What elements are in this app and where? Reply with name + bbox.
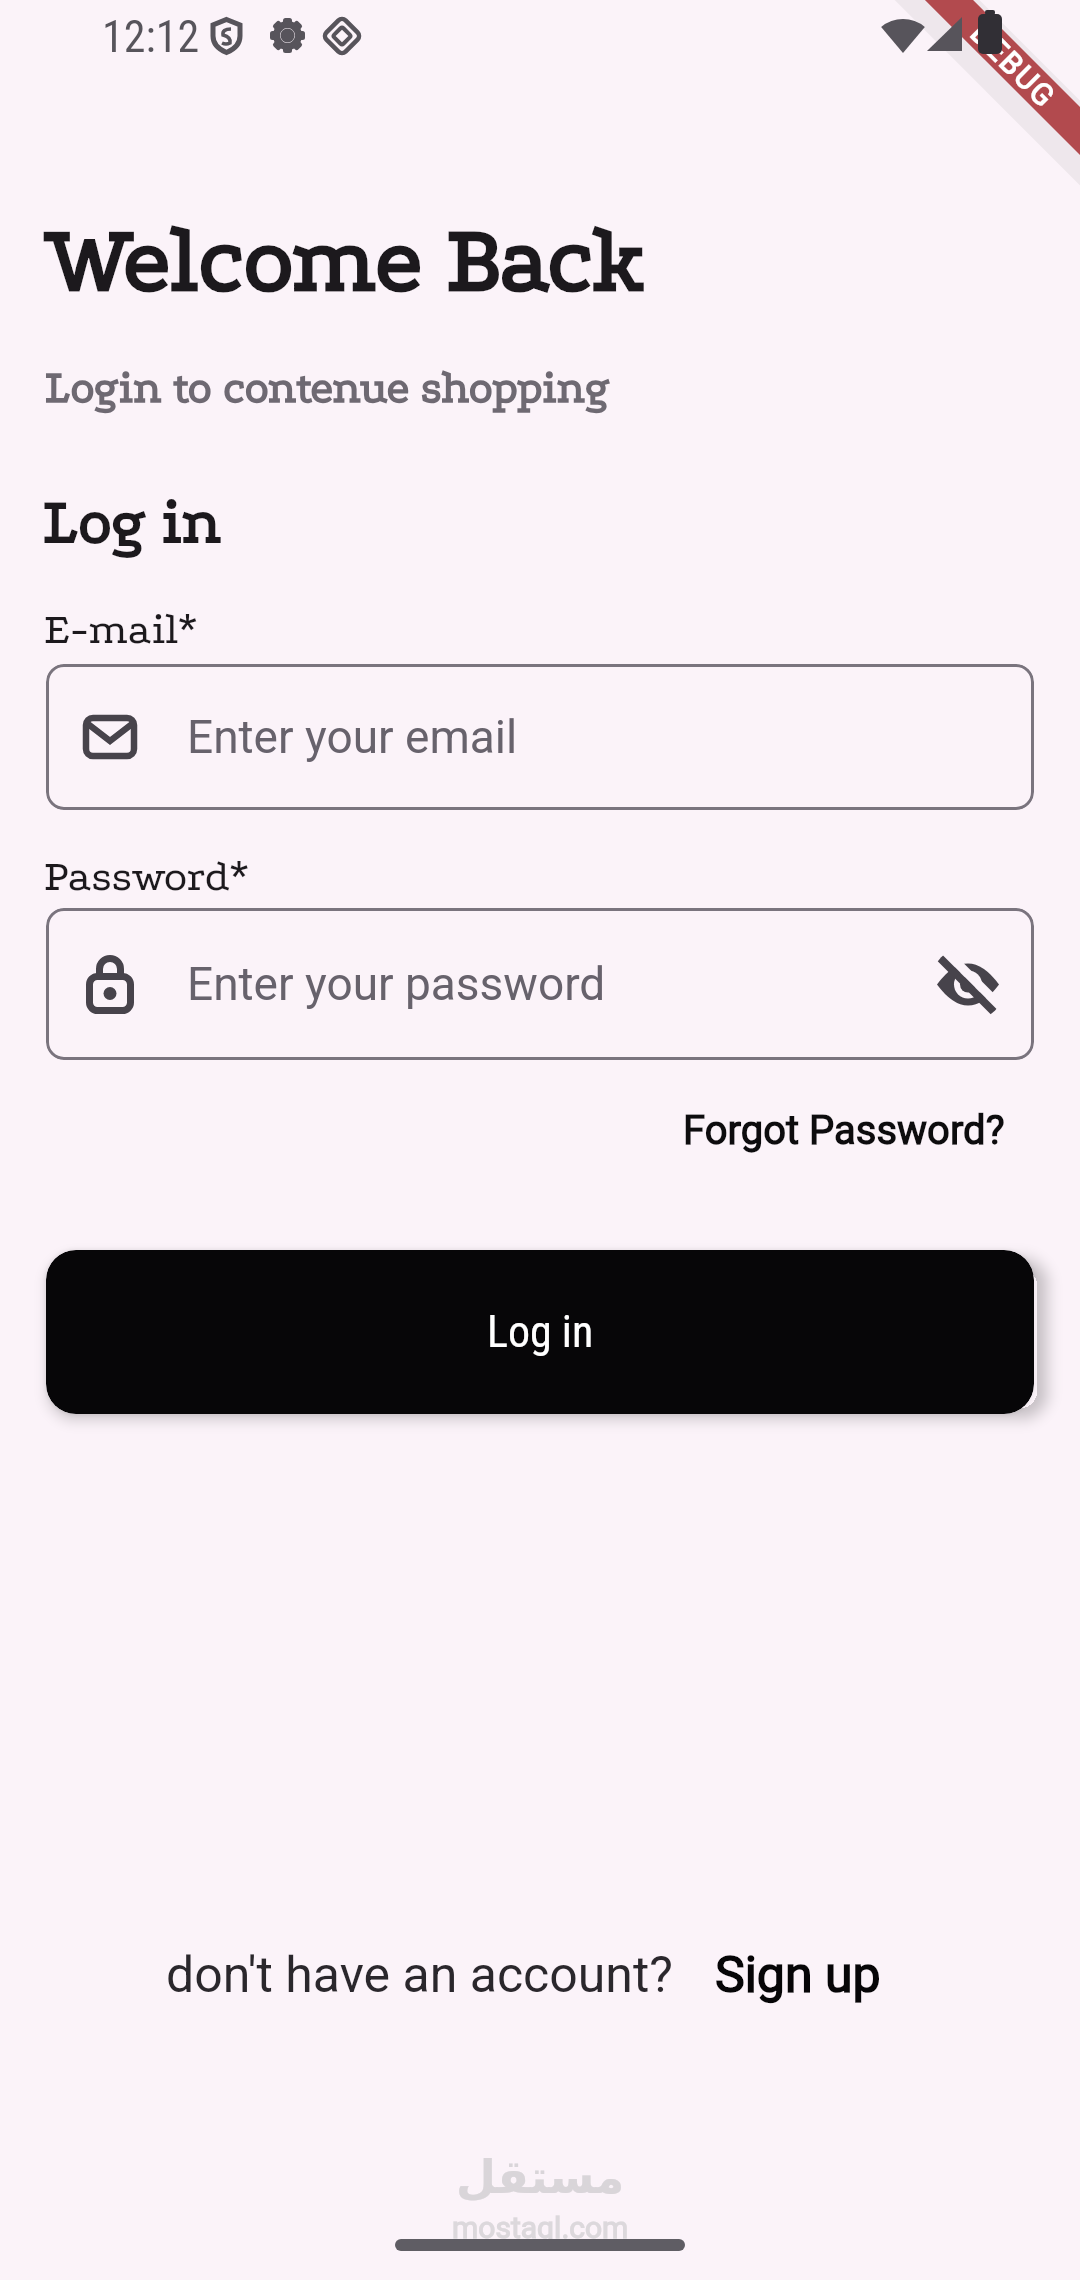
staticText: E-mail* xyxy=(44,604,197,654)
staticText: Log in xyxy=(487,1306,594,1358)
button[interactable]: Log in xyxy=(46,1250,1034,1414)
button[interactable] xyxy=(930,946,1006,1022)
staticText: Password* xyxy=(44,851,249,901)
staticText: Welcome Back xyxy=(45,208,646,314)
button[interactable]: Enter your email xyxy=(46,664,1034,810)
staticText: Log in xyxy=(43,487,222,558)
button[interactable]: Forgot Password? xyxy=(683,1107,1005,1154)
staticText: 12:12 xyxy=(102,11,200,63)
staticText: Enter your password xyxy=(187,957,606,1011)
staticText: Login to contenue shopping xyxy=(45,362,610,413)
button[interactable]: Sign up xyxy=(715,1946,881,2005)
staticText: مستقل xyxy=(456,2150,625,2204)
button[interactable]: Enter your password xyxy=(46,908,1034,1060)
staticText: Enter your email xyxy=(187,710,518,764)
staticText: mostaql.com xyxy=(452,2210,629,2245)
staticText: DEBUG xyxy=(964,15,1063,114)
staticText: don't have an account? xyxy=(166,1946,673,2005)
